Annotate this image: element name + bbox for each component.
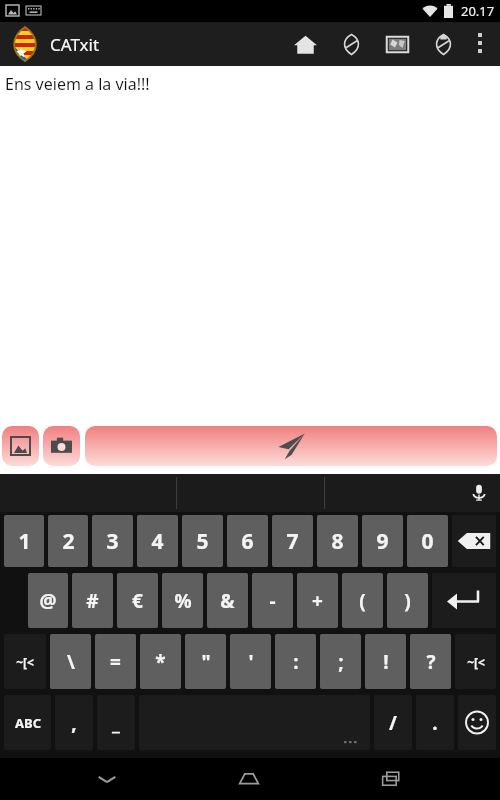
staticText: ' [248,649,254,675]
button[interactable]: + [297,573,338,628]
button[interactable]: Eggs [328,22,374,66]
button[interactable]: 3 [92,515,133,567]
button[interactable]: Attach image [2,426,39,466]
button[interactable]: Map [374,22,420,66]
staticText: ~[< [16,654,34,670]
button[interactable]: ? [410,634,451,689]
button[interactable]: \ [50,634,91,689]
button[interactable]: Voice input [458,474,500,512]
button[interactable]: ' [230,634,271,689]
button[interactable]: # [72,573,113,628]
staticText: @ [39,588,57,614]
button[interactable]: & [207,573,248,628]
button[interactable]: Back [72,758,142,800]
button[interactable]: @ [28,573,68,628]
button[interactable]: 9 [362,515,403,567]
staticText: : [293,649,299,675]
button[interactable]: Recent apps [357,758,427,800]
button[interactable]: ; [320,634,361,689]
button[interactable]: Emoji [458,695,496,750]
button[interactable]: Enter [432,573,496,628]
staticText: & [220,588,235,614]
staticText: ( [359,588,366,614]
button[interactable]: ! [365,634,406,689]
button[interactable]: Backspace [452,515,496,567]
button[interactable]: Home [282,22,328,66]
button[interactable]: = [95,634,136,689]
staticText: Ens veiem a la via!!! [5,73,150,95]
staticText: _ [112,710,120,736]
button[interactable]: 0 [407,515,448,567]
staticText: ~[< [467,654,485,670]
staticText: % [174,588,192,614]
staticText: ! [383,649,389,675]
staticText: ABC [15,714,41,732]
button[interactable]: ~[< [4,634,46,689]
button[interactable]: 4 [137,515,178,567]
staticText: # [86,588,99,614]
button[interactable]: _ [97,695,135,750]
staticText: 6 [241,527,254,556]
staticText: 8 [331,527,344,556]
button[interactable]: 2 [48,515,88,567]
button[interactable]: , [55,695,93,750]
button[interactable]: ( [342,573,383,628]
button[interactable]: Home [214,758,284,800]
button[interactable]: * [140,634,181,689]
staticText: 4 [151,527,164,556]
staticText: 5 [196,527,209,556]
staticText: , [71,710,77,736]
staticText: ) [404,588,411,614]
staticText: 20.17 [461,2,495,20]
staticText: / [389,710,397,736]
button[interactable]: Send [85,426,497,466]
button[interactable]: More options [466,22,494,66]
button[interactable]: 5 [182,515,223,567]
staticText: 0 [421,527,434,556]
staticText: 9 [376,527,389,556]
staticText: 7 [286,527,299,556]
button[interactable]: . [416,695,454,750]
staticText: CATxit [50,33,100,56]
button[interactable]: ABC [4,695,51,750]
staticText: \ [67,649,75,675]
staticText: - [269,588,276,614]
button[interactable]: € [117,573,158,628]
button[interactable]: ~[< [455,634,496,689]
button[interactable]: % [162,573,203,628]
button[interactable]: Egg details [420,22,466,66]
staticText: 3 [106,527,119,556]
button[interactable]: 1 [4,515,44,567]
staticText: ; [338,649,344,675]
button[interactable]: - [252,573,293,628]
button[interactable]: ) [387,573,428,628]
staticText: 2 [62,527,75,556]
button[interactable]: 7 [272,515,313,567]
staticText: ? [426,649,436,675]
button[interactable]: : [275,634,316,689]
staticText: € [132,588,143,614]
button[interactable]: / [374,695,412,750]
button[interactable]: Take photo [43,426,80,466]
staticText: + [312,588,323,614]
button[interactable]: CATxit [10,25,40,63]
button[interactable]: 6 [227,515,268,567]
button[interactable]: 8 [317,515,358,567]
staticText: * [155,649,166,675]
staticText: 1 [18,527,31,556]
staticText: . [432,710,438,736]
button[interactable]: " [185,634,226,689]
staticText: " [201,649,211,675]
staticText: = [110,649,121,675]
